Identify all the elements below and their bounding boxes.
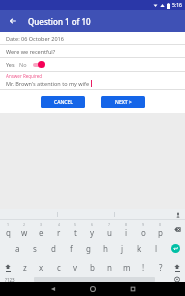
staticText: Date: 06 October 2016 — [6, 35, 64, 42]
staticText: Answer Required — [6, 73, 43, 79]
staticText: 5:16 — [172, 2, 182, 9]
button[interactable]: ! — [135, 258, 152, 277]
staticText: 6 — [91, 222, 94, 227]
button[interactable]: Back — [5, 13, 21, 29]
button[interactable]: 0 — [152, 220, 169, 239]
button[interactable]: NEXT > — [101, 96, 145, 108]
staticText: 9 — [142, 222, 145, 227]
button[interactable]: f — [62, 239, 80, 258]
button[interactable]: Shift — [0, 258, 16, 277]
staticText: 4 — [58, 222, 61, 227]
staticText: g — [86, 243, 91, 254]
button[interactable]: 5 — [67, 220, 84, 239]
staticText: d — [51, 243, 56, 254]
button[interactable]: Settings — [169, 277, 185, 282]
staticText: q — [6, 227, 11, 238]
button[interactable]: Enter — [165, 239, 185, 258]
button[interactable]: 6 — [84, 220, 101, 239]
button[interactable]: l — [148, 239, 165, 258]
staticText: f — [70, 243, 73, 254]
button[interactable]: Back — [33, 282, 73, 296]
button[interactable]: Voice input — [171, 209, 185, 220]
staticText: s — [33, 243, 37, 254]
staticText: ! — [142, 262, 145, 273]
button[interactable]: m — [118, 258, 135, 277]
button[interactable]: Were we recentful? — [0, 45, 185, 57]
button[interactable]: Answer Required — [0, 72, 185, 89]
staticText: l — [155, 243, 158, 254]
button[interactable]: k — [131, 239, 148, 258]
button[interactable]: 2 — [16, 220, 33, 239]
staticText: t — [74, 227, 77, 238]
button[interactable]: 7 — [101, 220, 118, 239]
button[interactable]: 3 — [33, 220, 50, 239]
button[interactable]: b — [84, 258, 101, 277]
button[interactable]: Backspace — [169, 220, 185, 239]
staticText: u — [107, 227, 112, 238]
button[interactable]: Home — [73, 282, 113, 296]
staticText: r — [57, 227, 61, 238]
staticText: Mr. Brown's attention to my wife — [6, 80, 90, 87]
button[interactable]: 9 — [135, 220, 152, 239]
staticText: 0 — [159, 222, 162, 227]
staticText: Question 1 of 10 — [28, 16, 91, 27]
button[interactable]: n — [101, 258, 118, 277]
staticText: CANCEL — [54, 99, 73, 106]
button[interactable]: Shift — [169, 258, 185, 277]
button[interactable]: Recent apps — [113, 282, 153, 296]
button[interactable] — [115, 209, 171, 220]
staticText: 8 — [125, 222, 128, 227]
staticText: j — [121, 243, 124, 254]
button[interactable]: 1 — [0, 220, 16, 239]
staticText: NEXT > — [115, 99, 132, 106]
button[interactable]: j — [114, 239, 131, 258]
staticText: h — [103, 243, 108, 254]
button[interactable]: Date: 06 October 2016 — [0, 32, 185, 44]
button[interactable]: CANCEL — [41, 96, 85, 108]
button[interactable]: 4 — [50, 220, 67, 239]
staticText: w — [21, 227, 28, 238]
staticText: v — [73, 262, 78, 273]
staticText: 7 — [108, 222, 111, 227]
staticText: k — [137, 243, 142, 254]
staticText: o — [141, 227, 146, 238]
staticText: Yes — [6, 61, 15, 68]
staticText: y — [90, 227, 95, 238]
button[interactable] — [0, 209, 57, 220]
button[interactable]: Toggle answer — [32, 60, 47, 69]
staticText: n — [107, 262, 112, 273]
button[interactable]: g — [80, 239, 97, 258]
staticText: m — [123, 262, 131, 273]
button[interactable]: h — [97, 239, 114, 258]
staticText: 2 — [23, 222, 26, 227]
button[interactable]: a — [8, 239, 26, 258]
staticText: z — [23, 262, 27, 273]
button[interactable]: v — [67, 258, 84, 277]
button[interactable]: z — [16, 258, 33, 277]
staticText: e — [39, 227, 44, 238]
staticText: ?123 — [5, 277, 15, 282]
staticText: No — [19, 61, 27, 68]
staticText: 1 — [7, 222, 10, 227]
staticText: ? — [159, 262, 163, 273]
button[interactable]: d — [44, 239, 62, 258]
button[interactable]: c — [50, 258, 67, 277]
button[interactable]: ? — [152, 258, 169, 277]
button[interactable]: Yes — [0, 58, 185, 71]
staticText: a — [15, 243, 20, 254]
button[interactable]: ?123 — [0, 277, 20, 282]
button[interactable] — [58, 209, 114, 220]
staticText: c — [57, 262, 61, 273]
button[interactable]: 8 — [118, 220, 135, 239]
button[interactable]: s — [26, 239, 44, 258]
staticText: Were we recentful? — [6, 48, 56, 55]
staticText: i — [125, 227, 128, 238]
staticText: 5 — [74, 222, 77, 227]
staticText: x — [39, 262, 44, 273]
button[interactable]: x — [33, 258, 50, 277]
